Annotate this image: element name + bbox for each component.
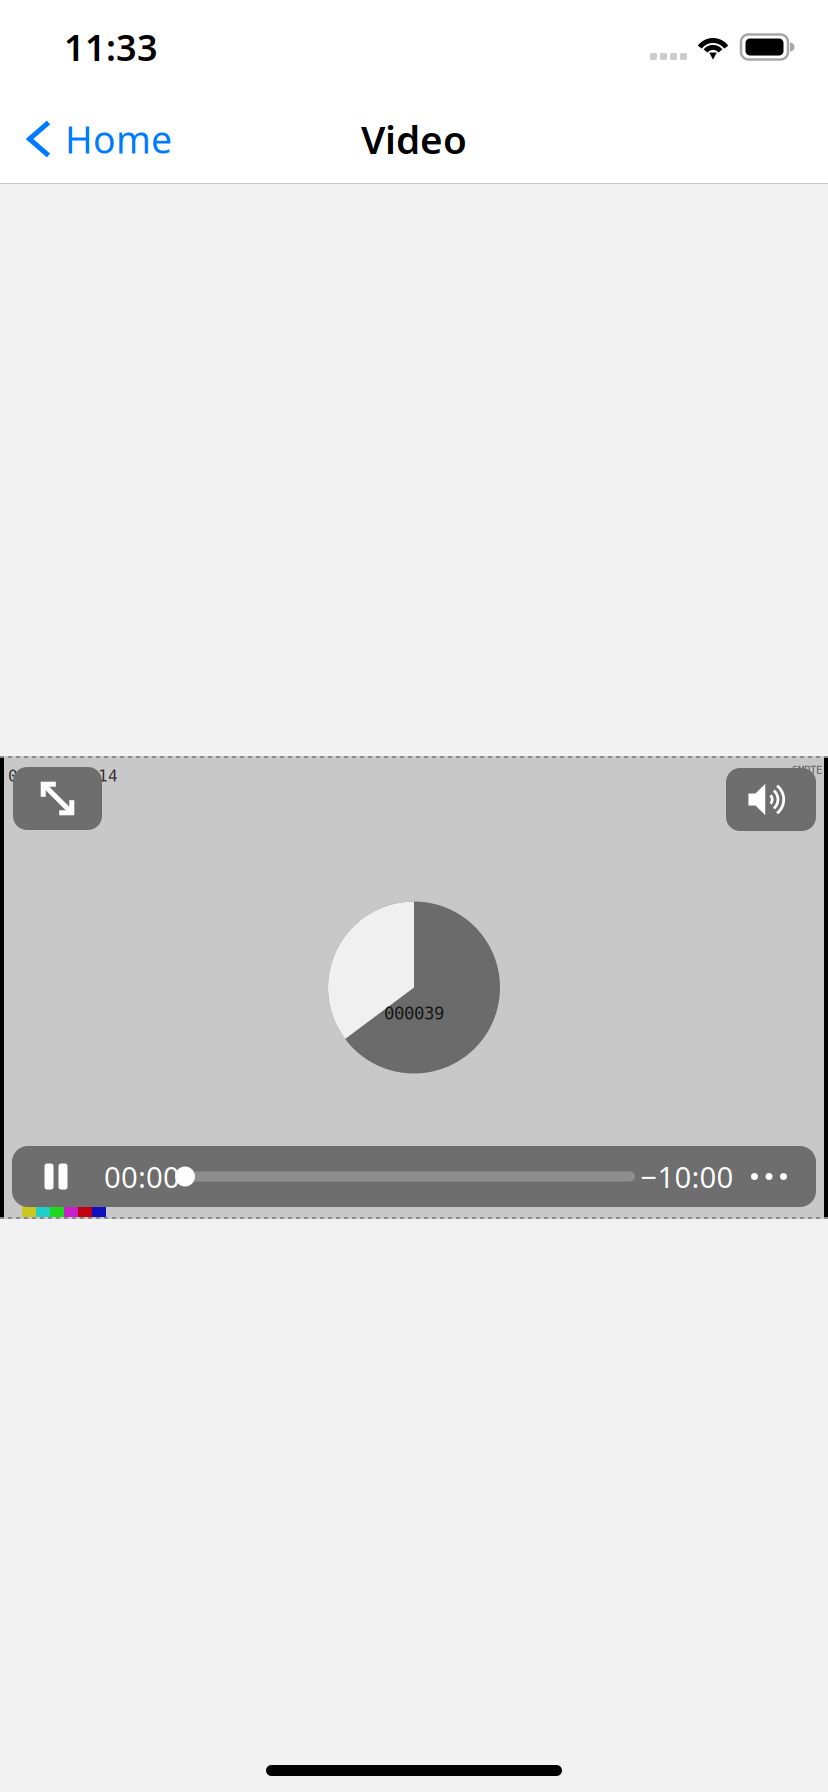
staticText: 11:33	[64, 23, 158, 71]
button[interactable]: Home	[0, 94, 194, 184]
staticText: SMPTE	[792, 764, 822, 776]
button[interactable]: Mute	[726, 768, 816, 831]
staticText: −10:00	[640, 1157, 733, 1196]
button[interactable]: Pause	[29, 1146, 83, 1207]
button[interactable]: More	[722, 1146, 816, 1207]
staticText: Video	[361, 113, 467, 165]
staticText: 00:00:01:14	[8, 767, 118, 785]
staticText: Home	[65, 114, 172, 164]
staticText: 00:00	[104, 1157, 180, 1196]
button[interactable]: Enter full screen	[13, 767, 102, 830]
staticText: 000039	[384, 1004, 444, 1023]
